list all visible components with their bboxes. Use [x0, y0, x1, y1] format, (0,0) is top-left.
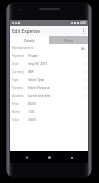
button[interactable]: Name: [10, 108, 88, 116]
staticText: Name: [12, 110, 28, 114]
staticText: Payment: [12, 54, 28, 58]
button[interactable]: Date: [10, 60, 88, 68]
staticText: Total amount: [12, 118, 28, 122]
staticText: Price: [12, 102, 28, 106]
staticText: Private: [28, 54, 84, 58]
staticText: Details: [24, 38, 35, 42]
staticText: Lunch and dinn: [28, 94, 84, 98]
button[interactable]: Photo: [49, 36, 88, 44]
button[interactable]: Type: [10, 76, 88, 84]
staticText: INR: [28, 70, 84, 74]
staticText: Select Purpose: [28, 86, 84, 90]
staticText: Business: [12, 94, 28, 98]
button[interactable]: Details: [10, 36, 49, 44]
button[interactable]: More options: [79, 27, 87, 35]
button[interactable]: Purpose: [10, 84, 88, 92]
button[interactable]: Business: [10, 92, 88, 100]
staticText: Edit Expense: [12, 28, 40, 34]
staticText: Reimbursement: [12, 46, 34, 50]
staticText: may 09, 2013: [28, 62, 84, 66]
staticText: Date: [12, 62, 28, 66]
staticText: 1.00: [28, 110, 86, 114]
staticText: Purpose: [12, 86, 28, 90]
staticText: 30.00: [28, 118, 86, 122]
button[interactable]: Home: [44, 152, 55, 163]
button[interactable]: Recents: [66, 152, 77, 163]
button[interactable]: Back: [21, 152, 32, 163]
staticText: Photo: [64, 38, 74, 42]
button[interactable]: Total amount: [10, 116, 88, 124]
button[interactable]: Price: [10, 100, 88, 108]
button[interactable]: Payment: [10, 52, 88, 60]
staticText: Type: [12, 78, 28, 82]
staticText: 2:30: [80, 21, 86, 25]
button[interactable]: Currency: [10, 68, 88, 76]
staticText: Select Type: [28, 78, 84, 82]
button[interactable]: Reimbursement: [10, 44, 88, 52]
staticText: 80.00: [28, 102, 86, 106]
staticText: Currency: [12, 70, 28, 74]
